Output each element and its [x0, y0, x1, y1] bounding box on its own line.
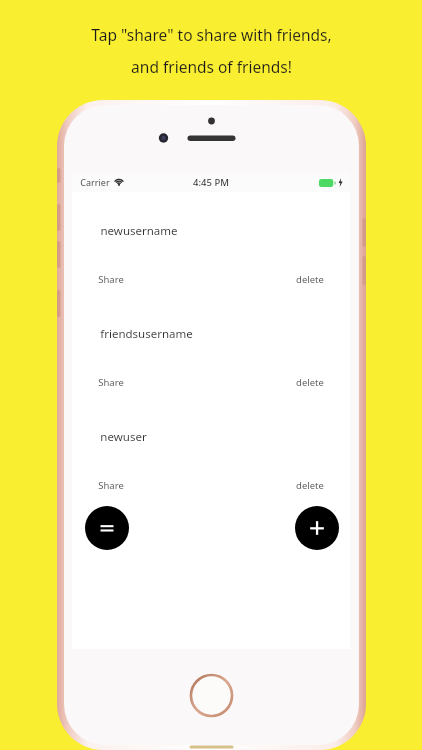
button[interactable]: Share	[96, 374, 126, 391]
staticText: newuser	[100, 429, 147, 445]
button[interactable]: newuser	[72, 429, 350, 494]
button[interactable]: Share	[96, 271, 126, 288]
button[interactable]: Menu	[85, 506, 129, 550]
staticText: and friends of friends!	[131, 56, 292, 77]
staticText: Share	[98, 273, 124, 286]
button[interactable]: delete	[294, 271, 326, 288]
staticText: delete	[296, 376, 324, 389]
button[interactable]: Share	[96, 477, 126, 494]
button[interactable]: newusername	[72, 223, 350, 288]
staticText: 4:45 PM	[193, 176, 229, 189]
staticText: friendsusername	[100, 326, 193, 342]
staticText: delete	[296, 479, 324, 492]
staticText: delete	[296, 273, 324, 286]
button[interactable]: delete	[294, 477, 326, 494]
staticText: Share	[98, 376, 124, 389]
staticText: Tap "share" to share with friends,	[91, 24, 332, 45]
staticText: Share	[98, 479, 124, 492]
button[interactable]: friendsusername	[72, 326, 350, 391]
button[interactable]: Home	[190, 674, 233, 717]
button[interactable]: delete	[294, 374, 326, 391]
button[interactable]: Add	[295, 506, 339, 550]
staticText: newusername	[100, 223, 178, 239]
staticText: Carrier	[80, 176, 110, 188]
